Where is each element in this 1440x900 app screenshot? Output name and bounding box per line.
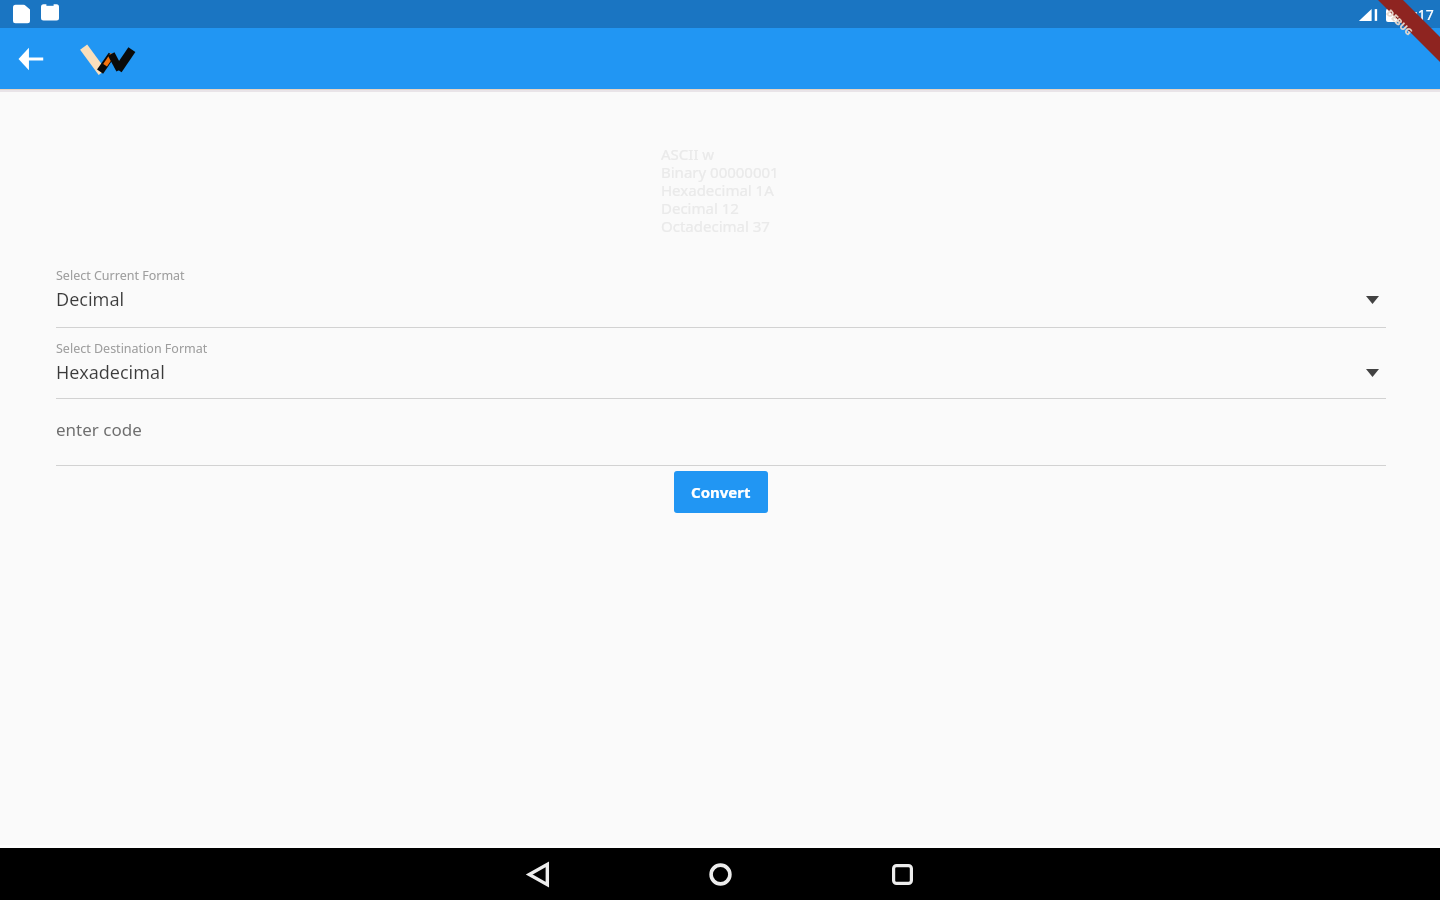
button[interactable]: Recent apps bbox=[874, 848, 930, 900]
button[interactable]: Convert bbox=[674, 471, 768, 513]
staticText: Decimal bbox=[56, 287, 1366, 312]
button[interactable]: Home bbox=[692, 848, 748, 900]
button[interactable]: enter code bbox=[56, 418, 1386, 466]
button[interactable]: Navigate up bbox=[9, 37, 53, 81]
staticText: ASCII w Binary 00000001 Hexadecimal 1A D… bbox=[661, 144, 779, 236]
button[interactable]: Select Destination Format bbox=[56, 340, 1386, 399]
staticText: Select Destination Format bbox=[56, 340, 208, 357]
staticText: Select Current Format bbox=[56, 267, 185, 284]
staticText: 5:17 bbox=[1406, 5, 1434, 24]
staticText: DEBUG bbox=[1384, 6, 1415, 37]
staticText: Hexadecimal bbox=[56, 360, 1366, 385]
button[interactable]: Select Current Format bbox=[56, 267, 1386, 328]
button[interactable]: Back bbox=[510, 848, 566, 900]
staticText: Convert bbox=[691, 482, 751, 502]
staticText: enter code bbox=[56, 418, 142, 441]
